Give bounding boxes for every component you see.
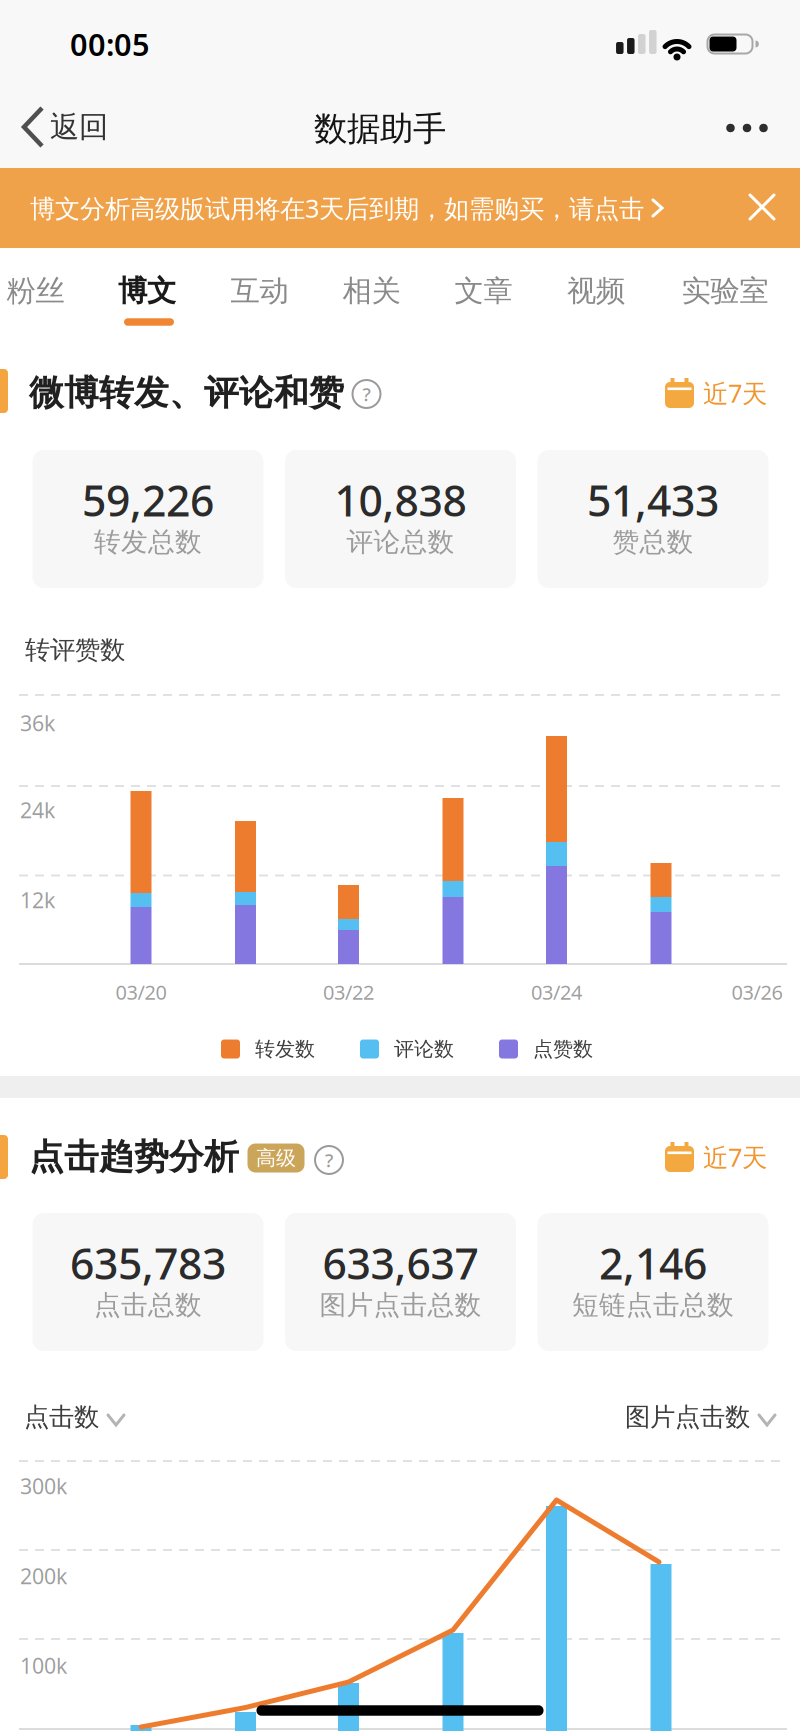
button[interactable]: 转发数 xyxy=(221,1037,315,1061)
button[interactable]: 评论数 xyxy=(360,1037,454,1061)
staticText: 635,783 xyxy=(70,1235,226,1291)
staticText: 03/24 xyxy=(531,979,582,1005)
button[interactable]: 选择指标 xyxy=(24,1401,124,1432)
staticText: 2,146 xyxy=(599,1235,707,1291)
staticText: 博文 xyxy=(118,273,176,309)
staticText: 点赞数 xyxy=(533,1037,593,1061)
staticText: 高级 xyxy=(256,1146,296,1170)
staticText: 转发总数 xyxy=(94,526,202,558)
staticText: 03/22 xyxy=(323,979,374,1005)
staticText: 短链点击总数 xyxy=(572,1289,734,1321)
staticText: 视频 xyxy=(567,273,625,309)
staticText: 相关 xyxy=(342,273,400,309)
staticText: 返回 xyxy=(50,109,108,145)
button[interactable]: 博文 xyxy=(118,259,176,323)
staticText: 实验室 xyxy=(681,273,768,309)
button[interactable]: 实验室 xyxy=(681,259,768,323)
button[interactable]: 互动 xyxy=(230,259,288,323)
button[interactable]: 文章 xyxy=(454,259,512,323)
staticText: 300k xyxy=(20,1472,67,1500)
button[interactable]: 关闭 xyxy=(739,184,785,230)
staticText: 59,226 xyxy=(82,472,214,528)
staticText: 100k xyxy=(20,1651,67,1680)
staticText: 点击趋势分析 xyxy=(29,1136,239,1178)
staticText: 评论总数 xyxy=(346,526,454,558)
button[interactable]: 相关 xyxy=(342,259,400,323)
staticText: 点击数 xyxy=(24,1401,99,1432)
staticText: 转发数 xyxy=(255,1037,315,1061)
button[interactable]: 点赞数 xyxy=(499,1037,593,1061)
button[interactable]: 粉丝 xyxy=(6,259,64,323)
staticText: ? xyxy=(325,1148,333,1172)
staticText: 评论数 xyxy=(394,1037,454,1061)
staticText: 转评赞数 xyxy=(25,634,125,665)
staticText: 633,637 xyxy=(322,1235,478,1291)
staticText: 近7天 xyxy=(703,376,767,410)
staticText: 互动 xyxy=(230,273,288,309)
button[interactable]: 视频 xyxy=(567,259,625,323)
staticText: 03/26 xyxy=(731,979,782,1005)
staticText: 03/20 xyxy=(115,979,166,1005)
staticText: 数据助手 xyxy=(314,108,446,149)
button[interactable]: 购买高级版 xyxy=(30,168,710,248)
staticText: 10,838 xyxy=(334,472,466,528)
staticText: 博文分析高级版试用将在3天后到期，如需购买，请点击 xyxy=(30,191,644,225)
staticText: 12k xyxy=(20,886,55,914)
button[interactable]: 选择时间范围 xyxy=(665,1140,767,1174)
button[interactable]: 选择时间范围 xyxy=(665,376,767,410)
staticText: 微博转发、评论和赞 xyxy=(29,372,344,414)
button[interactable]: 高级 xyxy=(247,1143,304,1172)
staticText: ? xyxy=(362,382,370,406)
staticText: 点击总数 xyxy=(94,1289,202,1321)
button[interactable]: 帮助 xyxy=(313,1144,345,1176)
staticText: 文章 xyxy=(454,273,512,309)
button[interactable]: 更多 xyxy=(714,103,780,153)
staticText: 图片点击数 xyxy=(625,1401,750,1432)
staticText: 24k xyxy=(20,796,55,824)
staticText: 图片点击总数 xyxy=(319,1289,481,1321)
button[interactable]: 返回 xyxy=(24,97,108,157)
staticText: 00:05 xyxy=(70,24,150,64)
staticText: 粉丝 xyxy=(6,273,64,309)
staticText: 51,433 xyxy=(587,472,719,528)
button[interactable]: 选择对比指标 xyxy=(625,1401,775,1432)
staticText: 近7天 xyxy=(703,1140,767,1174)
staticText: 赞总数 xyxy=(612,526,693,558)
staticText: 200k xyxy=(20,1562,67,1590)
staticText: 36k xyxy=(20,709,55,737)
button[interactable]: 帮助 xyxy=(350,378,382,410)
